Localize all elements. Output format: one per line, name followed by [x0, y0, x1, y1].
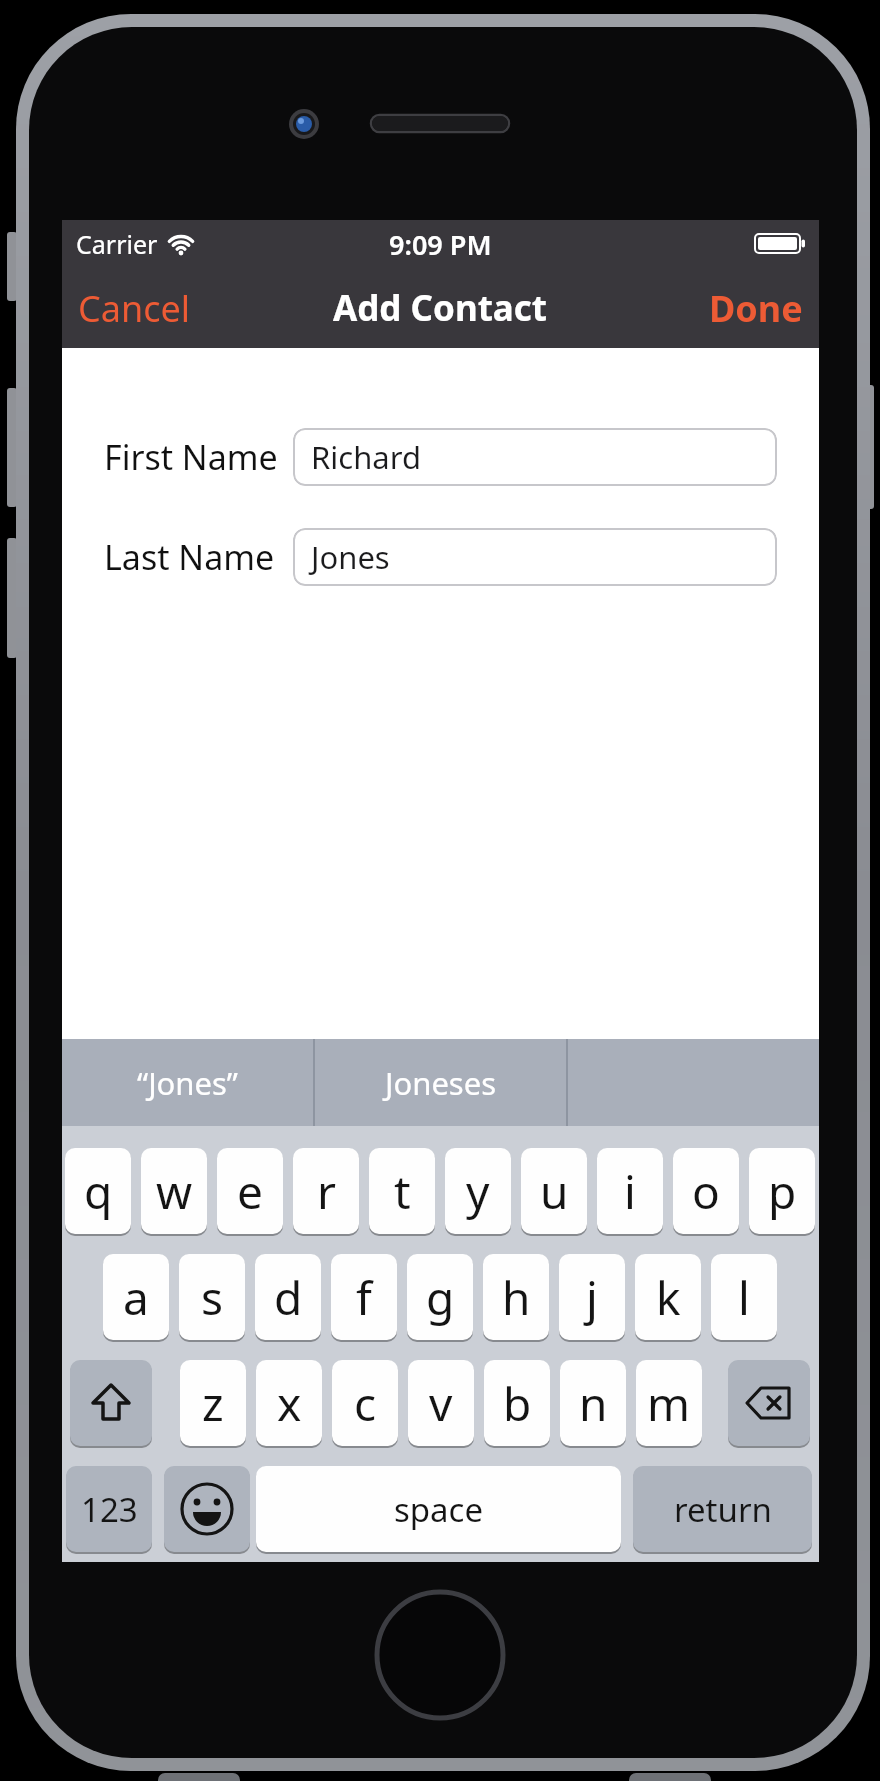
button[interactable]: Cancel	[78, 284, 191, 333]
button[interactable]: j	[559, 1254, 625, 1340]
button[interactable]: v	[408, 1360, 474, 1446]
button[interactable]: s	[179, 1254, 245, 1340]
staticText: Richard	[311, 436, 421, 478]
button[interactable]: o	[673, 1148, 739, 1234]
staticText: Add Contact	[333, 284, 548, 332]
staticText: Last Name	[104, 534, 275, 580]
staticText: 9:09 PM	[389, 226, 492, 263]
button[interactable]: b	[484, 1360, 550, 1446]
staticText: Carrier	[76, 227, 158, 261]
button[interactable]: r	[293, 1148, 359, 1234]
button[interactable]: q	[65, 1148, 131, 1234]
button[interactable]: c	[332, 1360, 398, 1446]
staticText: h	[502, 1266, 531, 1329]
staticText: 123	[81, 1487, 138, 1532]
staticText: t	[394, 1160, 411, 1223]
staticText: space	[394, 1487, 484, 1532]
staticText: w	[156, 1160, 193, 1223]
staticText: r	[317, 1160, 336, 1223]
button[interactable]: g	[407, 1254, 473, 1340]
button[interactable]: “Jones”	[62, 1039, 313, 1126]
button[interactable]: u	[521, 1148, 587, 1234]
staticText: d	[274, 1266, 303, 1329]
button[interactable]: e	[217, 1148, 283, 1234]
staticText: f	[356, 1266, 372, 1329]
button[interactable]: k	[635, 1254, 701, 1340]
staticText: o	[692, 1160, 720, 1223]
staticText: g	[426, 1266, 455, 1329]
staticText: l	[738, 1266, 750, 1329]
staticText: Joneses	[385, 1062, 497, 1104]
button[interactable]: p	[749, 1148, 815, 1234]
staticText: x	[277, 1372, 302, 1435]
staticText: b	[503, 1372, 532, 1435]
staticText: First Name	[104, 434, 278, 480]
button[interactable]	[70, 1360, 152, 1446]
button[interactable]: x	[256, 1360, 322, 1446]
staticText: Done	[709, 284, 803, 333]
button[interactable]: f	[331, 1254, 397, 1340]
button[interactable]: Joneses	[315, 1039, 566, 1126]
button[interactable]: y	[445, 1148, 511, 1234]
staticText: i	[624, 1160, 636, 1223]
staticText: s	[201, 1266, 224, 1329]
staticText: Jones	[311, 536, 390, 578]
staticText: m	[647, 1372, 691, 1435]
button[interactable]: l	[711, 1254, 777, 1340]
button[interactable]: n	[560, 1360, 626, 1446]
staticText: k	[656, 1266, 681, 1329]
staticText: a	[123, 1266, 149, 1329]
staticText: c	[354, 1372, 377, 1435]
button[interactable]: Richard	[293, 428, 777, 486]
button[interactable]: w	[141, 1148, 207, 1234]
button[interactable]: h	[483, 1254, 549, 1340]
staticText: e	[237, 1160, 263, 1223]
button[interactable]: z	[180, 1360, 246, 1446]
button[interactable]: 123	[66, 1466, 152, 1552]
staticText: p	[768, 1160, 797, 1223]
button[interactable]: Jones	[293, 528, 777, 586]
button[interactable]	[728, 1360, 810, 1446]
staticText: return	[674, 1487, 772, 1532]
button[interactable]: d	[255, 1254, 321, 1340]
button[interactable]: i	[597, 1148, 663, 1234]
staticText: q	[84, 1160, 113, 1223]
button[interactable]: t	[369, 1148, 435, 1234]
staticText: v	[429, 1372, 453, 1435]
button[interactable]	[164, 1466, 250, 1552]
staticText: y	[466, 1160, 490, 1223]
staticText: u	[540, 1160, 569, 1223]
staticText: “Jones”	[137, 1062, 238, 1104]
button[interactable]: space	[256, 1466, 621, 1552]
button[interactable]: Done	[709, 284, 803, 333]
button[interactable]: return	[633, 1466, 812, 1552]
staticText: n	[579, 1372, 608, 1435]
button[interactable]: m	[636, 1360, 702, 1446]
button[interactable]: a	[103, 1254, 169, 1340]
staticText: Cancel	[78, 284, 191, 333]
staticText: z	[202, 1372, 224, 1435]
staticText: j	[586, 1266, 598, 1329]
